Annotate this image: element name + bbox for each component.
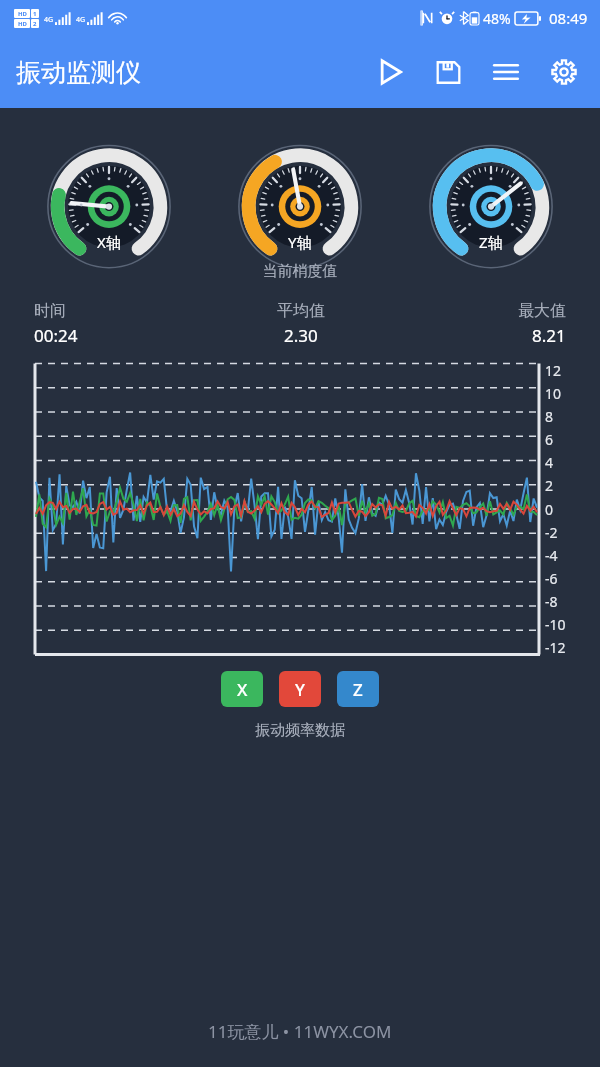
button[interactable]: Y <box>279 671 321 707</box>
staticText: 振动监测仪 <box>16 57 141 88</box>
staticText: X轴 <box>97 232 121 252</box>
staticText: -12 <box>545 638 566 657</box>
staticText: 08:49 <box>549 8 588 28</box>
staticText: 00:24 <box>34 324 78 347</box>
staticText: 4G <box>44 15 54 25</box>
staticText: Z轴 <box>479 232 503 252</box>
staticText: -4 <box>545 546 558 565</box>
staticText: X <box>237 678 248 701</box>
staticText: -8 <box>545 592 558 611</box>
button[interactable]: Save <box>426 50 470 94</box>
staticText: 时间 <box>34 301 66 321</box>
staticText: 2 <box>545 476 554 495</box>
staticText: 12 <box>545 361 562 380</box>
staticText: 4 <box>545 453 554 472</box>
staticText: 48% <box>483 9 511 28</box>
staticText: Y <box>295 678 305 701</box>
staticText: 2 <box>33 20 37 28</box>
staticText: 1 <box>33 10 37 18</box>
staticText: -2 <box>545 523 558 542</box>
staticText: 6 <box>545 430 554 449</box>
button[interactable]: Z <box>337 671 379 707</box>
staticText: HD <box>18 10 27 18</box>
staticText: 10 <box>545 384 562 403</box>
staticText: 4G <box>76 15 86 25</box>
staticText: 当前梢度值 <box>0 262 600 281</box>
staticText: -10 <box>545 615 566 634</box>
staticText: HD <box>18 20 27 28</box>
staticText: 振动频率数据 <box>0 721 600 740</box>
staticText: 最大值 <box>518 301 566 321</box>
staticText: 0 <box>545 500 554 519</box>
staticText: 8.21 <box>532 324 566 347</box>
staticText: 2.30 <box>284 324 318 347</box>
staticText: 11玩意儿 • 11WYX.COM <box>208 1020 392 1043</box>
staticText: -6 <box>545 569 558 588</box>
button[interactable]: Play <box>368 50 412 94</box>
staticText: 平均值 <box>277 301 325 321</box>
staticText: Z <box>353 678 363 701</box>
button[interactable]: Settings <box>542 50 586 94</box>
button[interactable]: Menu <box>484 50 528 94</box>
staticText: Y轴 <box>288 232 312 252</box>
staticText: 8 <box>545 407 554 426</box>
button[interactable]: X <box>221 671 263 707</box>
